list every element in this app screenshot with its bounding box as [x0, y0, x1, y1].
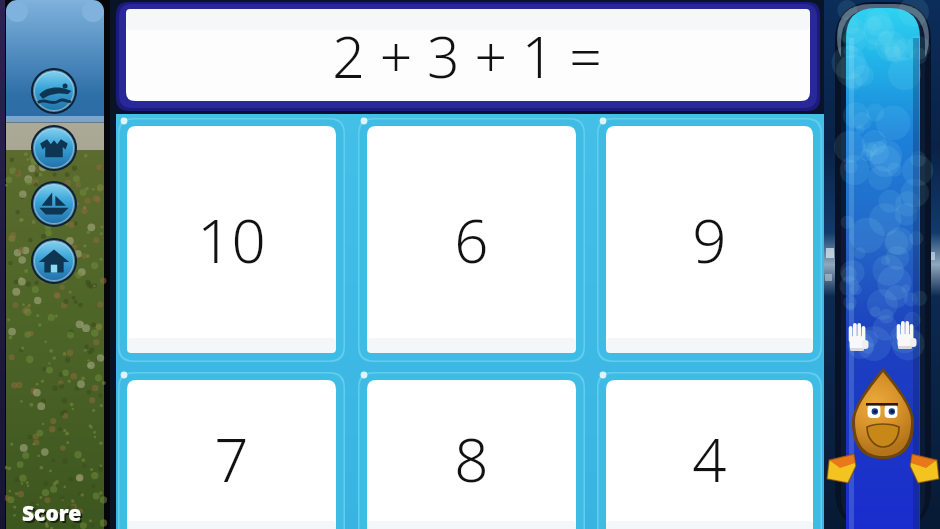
staticText: 9	[692, 199, 727, 281]
staticText: Score	[22, 499, 82, 528]
button[interactable]: 6	[358, 118, 585, 362]
button[interactable]: 8	[358, 372, 585, 529]
button[interactable]: 7	[118, 372, 345, 529]
button[interactable]: 4	[597, 372, 822, 529]
button[interactable]: Home	[31, 238, 77, 284]
staticText: 2 + 3 + 1 =	[332, 17, 602, 95]
button[interactable]: 9	[597, 118, 822, 362]
staticText: 4	[692, 418, 727, 500]
button[interactable]: 10	[118, 118, 345, 362]
staticText: 7	[214, 418, 249, 500]
staticText: Score	[24, 501, 104, 527]
button[interactable]: Boat	[31, 181, 77, 227]
staticText: 8	[454, 418, 489, 500]
staticText: 6	[454, 199, 489, 281]
staticText: 10	[197, 199, 266, 281]
button[interactable]: Swim	[31, 68, 77, 114]
button[interactable]: 2 + 3 + 1 =	[116, 12, 818, 100]
button[interactable]: Clothes	[31, 125, 77, 171]
